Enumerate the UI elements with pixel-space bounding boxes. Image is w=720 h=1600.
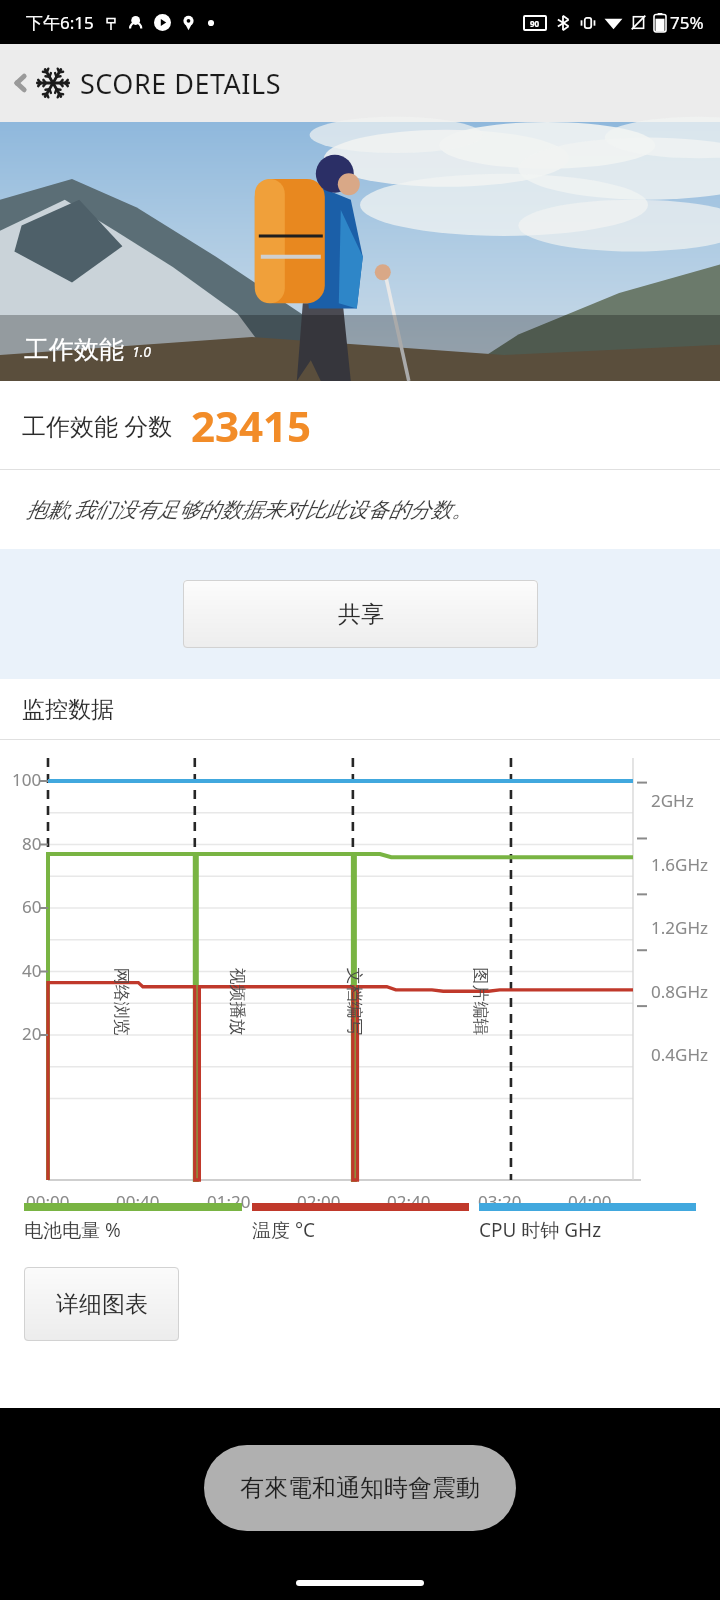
staticText: 工作效能 — [24, 334, 124, 365]
staticText: 2GHz — [651, 789, 694, 812]
staticText: 详细图表 — [56, 1290, 148, 1319]
staticText: 00:40 — [116, 1190, 160, 1213]
staticText: 90 — [530, 18, 540, 29]
staticText: 00:00 — [26, 1190, 70, 1213]
staticText: 有來電和通知時會震動 — [240, 1473, 480, 1503]
staticText: 文档编写 — [343, 967, 364, 1035]
button[interactable]: 共享 — [183, 580, 538, 648]
staticText: 视频播放 — [226, 967, 247, 1035]
staticText: 监控数据 — [22, 695, 114, 724]
staticText: 100 — [12, 768, 42, 791]
staticText: 共享 — [338, 600, 384, 629]
staticText: 60 — [22, 895, 42, 918]
staticText: 01:20 — [207, 1190, 251, 1213]
staticText: 23415 — [191, 397, 312, 454]
staticText: 电池电量 % — [24, 1217, 121, 1243]
staticText: 02:40 — [387, 1190, 431, 1213]
staticText: 温度 °C — [252, 1217, 316, 1243]
staticText: CPU 时钟 GHz — [479, 1217, 602, 1243]
other: Back — [8, 70, 34, 96]
staticText: 1.6GHz — [651, 853, 708, 876]
button[interactable]: 详细图表 — [24, 1267, 179, 1341]
staticText: 20 — [22, 1022, 42, 1045]
staticText: 网络浏览 — [110, 967, 131, 1035]
staticText: 80 — [22, 832, 42, 855]
staticText: 02:00 — [297, 1190, 341, 1213]
staticText: 04:00 — [568, 1190, 612, 1213]
staticText: 下午6:15 — [26, 11, 94, 34]
button[interactable]: Back — [0, 44, 720, 122]
staticText: 0.4GHz — [651, 1043, 708, 1066]
staticText: SCORE DETAILS — [80, 65, 281, 102]
staticText: 0.8GHz — [651, 980, 708, 1003]
staticText: 40 — [22, 959, 42, 982]
staticText: 1.0 — [132, 342, 152, 361]
staticText: 抱歉,我们没有足够的数据来对比此设备的分数。 — [26, 495, 473, 524]
staticText: 1.2GHz — [651, 916, 708, 939]
staticText: 75% — [670, 11, 704, 34]
staticText: 工作效能 分数 — [22, 409, 173, 442]
staticText: 图片编辑 — [469, 967, 490, 1035]
staticText: 03:20 — [478, 1190, 522, 1213]
